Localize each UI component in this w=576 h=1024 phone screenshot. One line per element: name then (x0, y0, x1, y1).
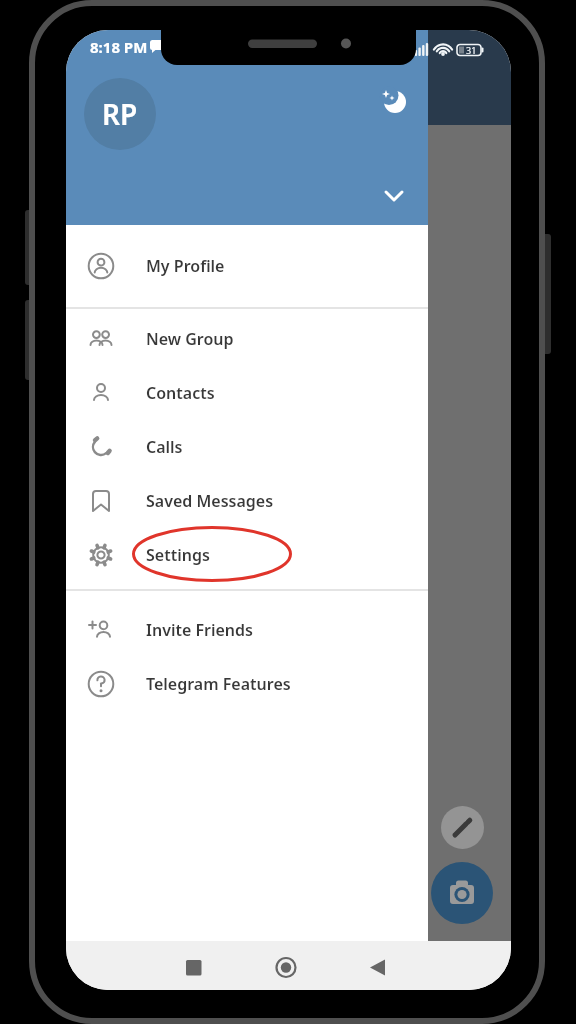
button[interactable]: Settings (66, 528, 428, 582)
button[interactable]: Calls (66, 420, 428, 474)
staticText: 31 (466, 44, 477, 56)
button[interactable]: New Group (66, 312, 428, 366)
button[interactable] (348, 941, 408, 990)
staticText: Calls (146, 436, 183, 458)
button[interactable] (373, 80, 417, 124)
button[interactable] (441, 806, 484, 849)
button[interactable]: My Profile (66, 239, 428, 293)
staticText: 8:18 PM (90, 37, 148, 57)
staticText: New Group (146, 328, 234, 350)
button[interactable] (372, 174, 416, 218)
button[interactable]: RP (84, 78, 156, 150)
staticText: Saved Messages (146, 490, 274, 512)
staticText: Telegram Features (146, 673, 291, 695)
staticText: Contacts (146, 382, 215, 404)
button[interactable] (431, 862, 493, 924)
button[interactable]: Contacts (66, 366, 428, 420)
staticText: Invite Friends (146, 619, 253, 641)
button[interactable]: Invite Friends (66, 603, 428, 657)
staticText: RP (102, 95, 138, 133)
button[interactable] (164, 941, 224, 990)
button[interactable]: Saved Messages (66, 474, 428, 528)
button[interactable]: Telegram Features (66, 657, 428, 711)
staticText: My Profile (146, 255, 225, 277)
button[interactable] (256, 941, 316, 990)
staticText: Settings (146, 544, 210, 566)
